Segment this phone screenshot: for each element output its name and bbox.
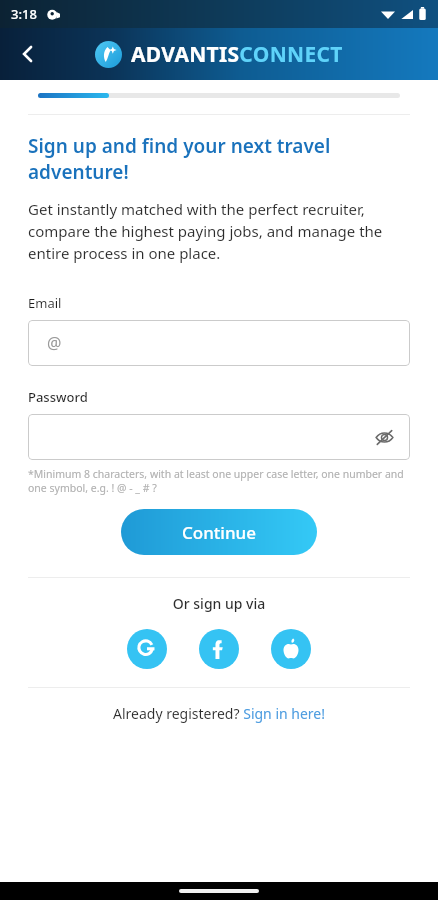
staticText: Password [28,388,88,406]
button[interactable]: Continue [121,509,317,555]
button[interactable]: Sign up with Facebook [199,629,239,669]
staticText: Or sign up via [28,594,410,613]
button[interactable]: Sign up with Apple [271,629,311,669]
staticText: Continue [182,521,257,544]
staticText: Get instantly matched with the perfect r… [28,199,410,264]
staticText: *Minimum 8 characters, with at least one… [28,467,410,495]
button[interactable]: Already registered? Sign in here! [28,704,410,723]
staticText: 3:18 [11,5,37,23]
staticText: Email [28,294,62,312]
staticText: @ [47,332,62,354]
staticText: ADVANTISCONNECT [131,40,343,69]
button[interactable]: Show password [368,421,400,453]
button[interactable]: Show password [28,414,410,460]
staticText: Already registered? Sign in here! [113,704,326,723]
staticText: Sign up and find your next travel advent… [28,133,410,185]
button[interactable]: Back [6,32,50,76]
button[interactable]: Sign up with Google [127,629,167,669]
button[interactable]: @ [28,320,410,366]
